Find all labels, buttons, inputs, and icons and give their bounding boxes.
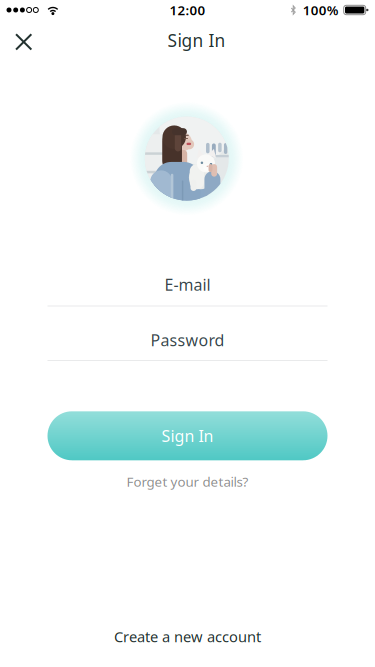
staticText: Forget your details? [126,473,248,490]
staticText: E-mail [164,274,210,295]
staticText: Sign In [168,29,226,52]
staticText: Password [150,329,224,351]
staticText: Create a new account [114,627,261,646]
staticText: 100% [303,1,339,19]
button[interactable]: Sign In [47,411,327,460]
button[interactable]: Create a new account [82,619,292,653]
button[interactable]: Close [2,20,46,64]
staticText: 12:00 [169,1,205,19]
button[interactable]: Forget your details? [107,468,267,494]
staticText: Sign In [161,425,213,446]
